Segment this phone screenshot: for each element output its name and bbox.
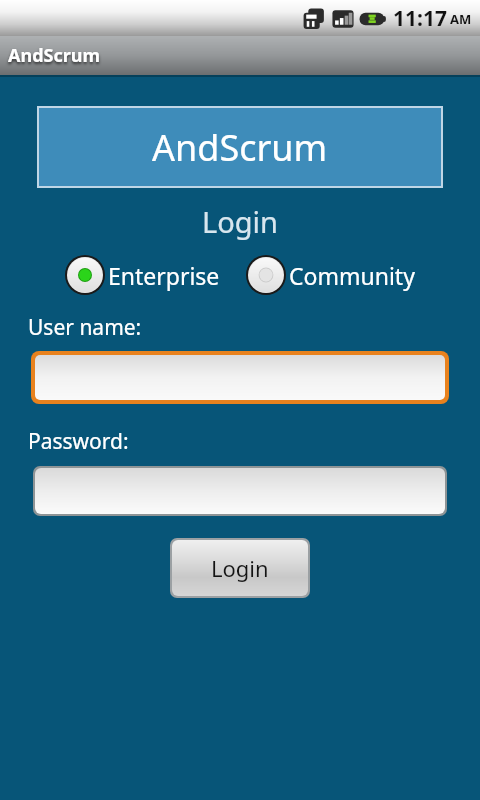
button[interactable]: Community: [244, 253, 417, 297]
button[interactable]: [35, 468, 445, 514]
staticText: Enterprise: [108, 260, 220, 291]
button[interactable]: Enterprise: [63, 253, 222, 297]
button[interactable]: AndScrum: [37, 106, 443, 188]
staticText: AndScrum: [152, 123, 328, 172]
staticText: AM: [450, 10, 472, 28]
staticText: Password:: [28, 427, 129, 456]
other: 3G data: [301, 6, 327, 32]
staticText: User name:: [28, 313, 142, 342]
staticText: Community: [289, 260, 415, 291]
staticText: Login: [202, 202, 278, 241]
button[interactable]: Login: [172, 540, 308, 596]
staticText: Login: [211, 553, 269, 583]
other: Signal strength: [331, 7, 355, 31]
other: Battery charging: [359, 8, 387, 30]
staticText: 11:17: [393, 4, 447, 33]
staticText: AndScrum: [8, 43, 101, 68]
button[interactable]: [35, 355, 445, 400]
